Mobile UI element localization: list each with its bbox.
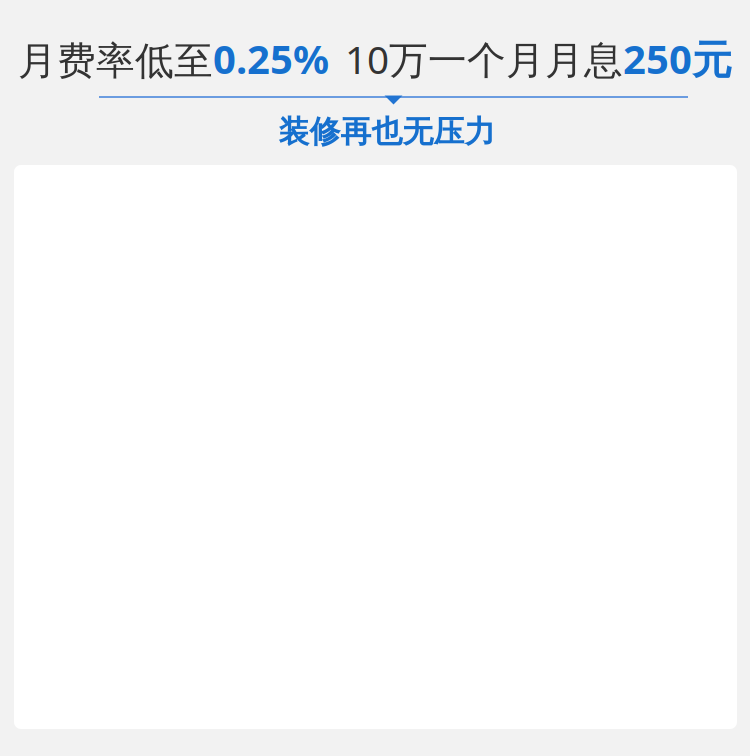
staticText: 月费率低至 [18, 37, 213, 85]
staticText: 250元 [623, 32, 732, 85]
staticText: 0.25% [213, 32, 329, 85]
staticText: 10万一个月月息 [329, 33, 623, 85]
button[interactable]: 月费率低至0.25%,10万一个月月息250元,装修再也无压力 [0, 0, 750, 160]
staticText: 装修再也无压力 [278, 113, 495, 151]
